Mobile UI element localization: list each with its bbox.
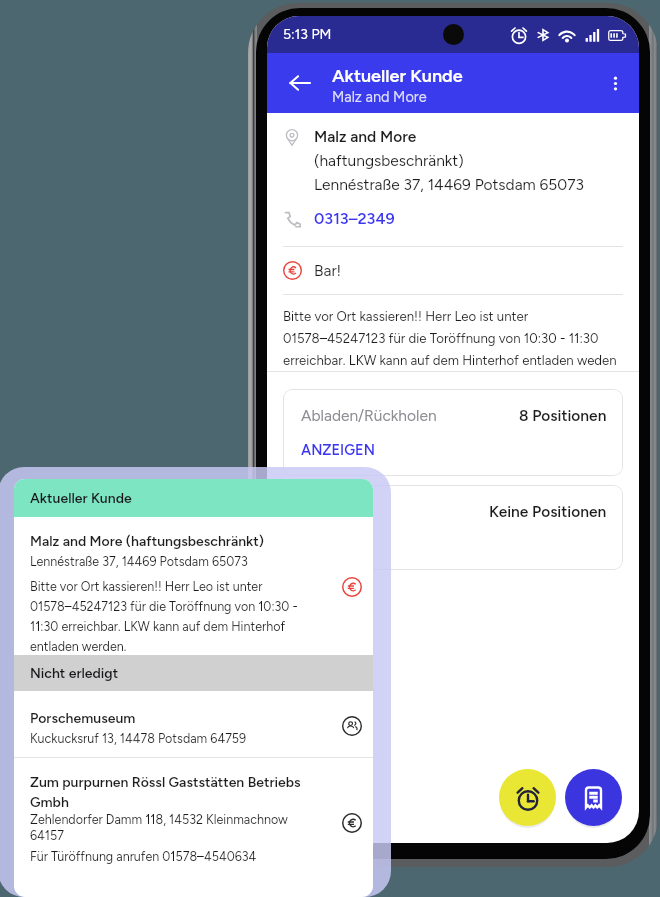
button[interactable]: Receipt [565, 769, 622, 826]
staticText: Porschemuseum [30, 707, 136, 727]
button[interactable]: 0313–2349 [283, 209, 623, 228]
staticText: Aktueller Kunde [30, 490, 132, 507]
staticText: Bitte vor Ort kassieren!! Herr Leo ist u… [30, 575, 298, 655]
staticText: Kuckucksruf 13, 14478 Potsdam 64759 [30, 727, 247, 747]
staticText: Aktueller Kunde [332, 65, 463, 87]
button[interactable]: Positionen [283, 485, 623, 570]
button[interactable]: Abladen/Rückholen [283, 389, 623, 476]
staticText: 8 Positionen [519, 406, 607, 425]
staticText: Keine Positionen [489, 502, 607, 521]
staticText: Zehlendorfer Damm 118, 14532 Kleinmachno… [30, 811, 288, 843]
button[interactable]: ANZEIGEN [301, 441, 375, 458]
staticText: Bar! [314, 261, 342, 280]
staticText: 0313–2349 [314, 209, 395, 228]
staticText: Abladen/Rückholen [301, 406, 519, 425]
button[interactable]: Porschemuseum [14, 691, 373, 757]
staticText: (haftungsbeschränkt) [314, 147, 464, 171]
staticText: Malz and More [332, 88, 427, 105]
staticText: Positionen [301, 502, 489, 521]
staticText: Nicht erledigt [30, 665, 119, 682]
button[interactable]: Zum purpurnen Rössl Gaststätten Betriebs… [14, 758, 373, 897]
button[interactable]: More options [591, 53, 639, 113]
staticText: Bitte vor Ort kassieren!! Herr Leo ist u… [283, 304, 617, 370]
button[interactable]: Set alarm [499, 769, 556, 826]
staticText: Für Türöffnung anrufen 01578–4540634 [30, 849, 257, 864]
button[interactable]: Back [267, 53, 332, 113]
staticText: Lennéstraße 37, 14469 Potsdam 65073 [314, 171, 584, 195]
staticText: Malz and More (haftungsbeschränkt) [30, 530, 265, 550]
staticText: 5:13 PM [283, 26, 332, 43]
staticText: Zum purpurnen Rössl Gaststätten Betriebs… [30, 771, 325, 811]
staticText: Malz and More [314, 123, 417, 147]
staticText: Lennéstraße 37, 14469 Potsdam 65073 [30, 550, 248, 570]
